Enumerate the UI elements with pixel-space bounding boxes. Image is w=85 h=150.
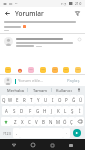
staticText: L	[64, 108, 67, 114]
staticText: M	[56, 119, 60, 125]
button[interactable]: Emoji 3	[39, 66, 46, 73]
button[interactable]: G	[34, 106, 41, 115]
staticText: J	[51, 108, 53, 114]
button[interactable]: Back	[3, 9, 12, 18]
staticText: Kullanıcı	[56, 88, 72, 93]
staticText: 21:0	[75, 2, 82, 6]
staticText: Ü	[79, 97, 83, 103]
staticText: Yorum ekle...	[18, 78, 44, 84]
button[interactable]: Paylaş	[66, 78, 81, 84]
staticText: W	[8, 97, 13, 103]
staticText: Ş	[71, 108, 74, 114]
button[interactable]: O	[56, 95, 63, 104]
staticText: ••	[15, 2, 18, 6]
button[interactable]: V	[33, 117, 40, 126]
button[interactable]: Ğ	[70, 95, 77, 104]
staticText: H	[43, 108, 47, 114]
button[interactable]: W	[7, 95, 14, 104]
staticText: E	[16, 97, 19, 103]
button[interactable]: T	[28, 95, 35, 104]
staticText: I	[52, 97, 54, 103]
button[interactable]: Ü	[77, 95, 84, 104]
button[interactable]: H	[41, 106, 48, 115]
button[interactable]: Like	[0, 34, 85, 50]
button[interactable]: Shift	[1, 117, 11, 126]
button[interactable]: Yorum ekle...	[15, 78, 66, 84]
staticText: U	[44, 97, 48, 103]
button[interactable]: Send	[73, 129, 81, 137]
staticText: K	[57, 108, 60, 114]
staticText: X	[21, 119, 24, 125]
button[interactable]: Emoji 6	[74, 66, 81, 73]
staticText: A	[5, 108, 8, 114]
staticText: N	[49, 119, 53, 125]
staticText: B	[42, 119, 45, 125]
button[interactable]: Voice input	[75, 86, 82, 94]
staticText: Z	[14, 119, 17, 125]
button[interactable]: N	[47, 117, 54, 126]
staticText: Q	[2, 97, 6, 103]
button[interactable]: K	[55, 106, 62, 115]
staticText: S	[13, 108, 16, 114]
button[interactable]: L	[62, 106, 69, 115]
button[interactable]: Filter	[73, 9, 82, 18]
staticText: ▾ ◔	[61, 2, 67, 6]
button[interactable]: F	[26, 106, 34, 115]
button[interactable]: Kullanıcı	[52, 86, 75, 94]
staticText: Ç	[70, 119, 73, 125]
button[interactable]: P	[63, 95, 70, 104]
button[interactable]: Ç	[68, 117, 75, 126]
button[interactable]: U	[42, 95, 49, 104]
button[interactable]: Q	[1, 95, 7, 104]
staticText: P	[65, 97, 68, 103]
button[interactable]: Y	[35, 95, 42, 104]
button[interactable]: D	[18, 106, 26, 115]
staticText: ,	[16, 130, 18, 136]
staticText: Ö	[63, 119, 67, 125]
button[interactable]: İ	[76, 106, 83, 115]
button[interactable]: Emoji 5	[62, 66, 69, 73]
staticText: G	[36, 108, 40, 114]
button[interactable]: Back	[9, 140, 19, 150]
button[interactable]: Merhaba	[3, 86, 27, 94]
staticText: Ğ	[72, 97, 76, 103]
button[interactable]: Emoji 2	[27, 66, 34, 73]
button[interactable]: S	[10, 106, 18, 115]
button[interactable]: Keyboard	[66, 140, 76, 150]
staticText: Paylaş	[67, 78, 80, 84]
button[interactable]: Period	[63, 128, 70, 138]
button[interactable]: Backspace	[75, 117, 84, 126]
button[interactable]: Tamam	[28, 86, 51, 94]
staticText: Y	[37, 97, 40, 103]
button[interactable]: Like	[77, 37, 81, 41]
staticText: Yorumlar	[15, 9, 44, 18]
button[interactable]: Emoji 0	[4, 66, 11, 73]
staticText: C	[28, 119, 31, 125]
button[interactable]: X	[19, 117, 26, 126]
button[interactable]: A	[2, 106, 10, 115]
button[interactable]: E	[14, 95, 21, 104]
staticText: O	[58, 97, 62, 103]
button[interactable]: Z	[11, 117, 19, 126]
staticText: D	[20, 108, 24, 114]
button[interactable]: Recents	[47, 140, 57, 150]
button[interactable]: R	[21, 95, 28, 104]
staticText: İ	[79, 108, 81, 114]
button[interactable]: Emoji 4	[51, 66, 58, 73]
button[interactable]: M	[54, 117, 61, 126]
staticText: ?123	[3, 131, 11, 136]
button[interactable]: Emoji 1	[16, 66, 23, 73]
button[interactable]	[0, 19, 85, 33]
button[interactable]: J	[48, 106, 55, 115]
button[interactable]: B	[40, 117, 47, 126]
staticText: Merhaba	[7, 88, 24, 93]
staticText: T	[30, 97, 33, 103]
button[interactable]: I	[49, 95, 56, 104]
button[interactable]: Ş	[69, 106, 76, 115]
button[interactable]: Comma	[13, 128, 20, 138]
button[interactable]: Ö	[61, 117, 68, 126]
button[interactable]: ?123	[1, 128, 13, 138]
button[interactable]: Home	[28, 140, 38, 150]
button[interactable]: C	[26, 117, 33, 126]
